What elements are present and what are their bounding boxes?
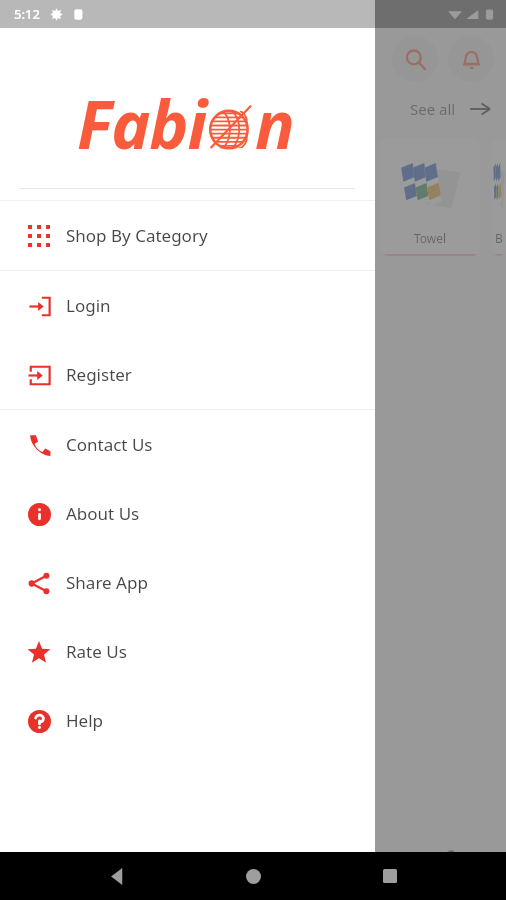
button[interactable]: Home — [233, 856, 273, 896]
button[interactable]: Search — [392, 36, 438, 82]
button[interactable]: Account — [406, 849, 496, 889]
button[interactable]: Shop By Category — [0, 201, 375, 270]
staticText: Towel — [414, 230, 447, 246]
staticText: Share App — [66, 571, 148, 594]
staticText: Register — [66, 363, 132, 386]
staticText: Shop By Category — [66, 224, 208, 247]
button[interactable]: Towel — [380, 138, 480, 256]
staticText: Login — [66, 294, 111, 317]
button[interactable]: Recent apps — [370, 856, 410, 896]
staticText: Fabi — [77, 78, 207, 168]
button[interactable]: Share App — [0, 548, 375, 617]
staticText: 5:12 — [14, 5, 40, 23]
button[interactable]: Login — [0, 271, 375, 340]
button[interactable]: Contact Us — [0, 410, 375, 479]
staticText: Help — [66, 709, 104, 732]
staticText: See all — [410, 99, 456, 119]
staticText: n — [255, 78, 295, 168]
staticText: B — [495, 230, 503, 246]
button[interactable]: Register — [0, 340, 375, 409]
staticText: Contact Us — [66, 433, 153, 456]
button[interactable]: Notifications — [448, 36, 494, 82]
button[interactable]: Help — [0, 686, 375, 755]
button[interactable]: About Us — [0, 479, 375, 548]
button[interactable]: B — [492, 138, 506, 256]
button[interactable]: Rate Us — [0, 617, 375, 686]
staticText: Rate Us — [66, 640, 127, 663]
staticText: About Us — [66, 502, 140, 525]
button[interactable]: Back — [97, 856, 137, 896]
